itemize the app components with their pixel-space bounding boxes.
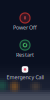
button[interactable]: Power Off [4,13,46,31]
button[interactable]: Emergency Call [1,66,49,81]
button[interactable]: Restart [4,40,46,58]
staticText: Power Off [13,24,37,31]
staticText: Emergency Call [6,74,43,81]
staticText: Restart [16,51,34,58]
